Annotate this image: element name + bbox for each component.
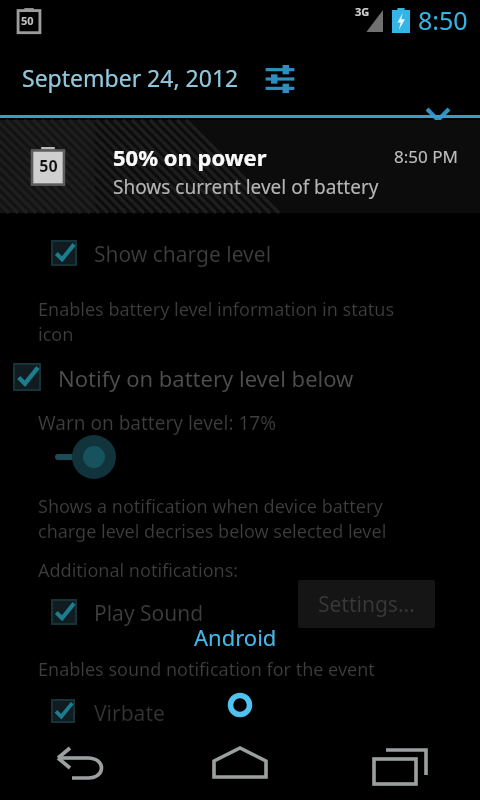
staticText: Shows current level of battery	[113, 174, 379, 200]
button[interactable]: Settings...	[298, 580, 435, 628]
staticText: Notify on battery level below	[58, 363, 354, 393]
staticText: Settings...	[318, 590, 415, 619]
button[interactable]	[52, 241, 76, 265]
staticText: 50% on power	[113, 142, 267, 172]
button[interactable]: Close	[420, 102, 456, 138]
button[interactable]: Quick settings	[262, 61, 298, 97]
staticText: September 24, 2012	[22, 62, 239, 93]
staticText: 8:50	[418, 3, 468, 37]
button[interactable]	[52, 600, 76, 624]
staticText: Enables sound notification for the event	[38, 657, 375, 682]
staticText: Warn on battery level: 17%	[38, 410, 276, 436]
button[interactable]: Home	[160, 728, 320, 800]
staticText: Shows a notification when device battery	[38, 494, 383, 519]
button[interactable]: Recents	[320, 728, 480, 800]
button[interactable]	[52, 700, 74, 722]
staticText: icon	[38, 322, 74, 347]
staticText: 50	[21, 13, 34, 28]
staticText: Play Sound	[94, 599, 204, 628]
staticText: Virbate	[94, 699, 165, 728]
staticText: 8:50 PM	[394, 145, 458, 168]
button[interactable]	[14, 364, 40, 390]
staticText: Enables battery level information in sta…	[38, 297, 395, 322]
staticText: Additional notifications:	[38, 558, 239, 583]
staticText: charge level decrises below selected lev…	[38, 519, 387, 544]
staticText: 50	[39, 155, 58, 177]
staticText: 3G	[355, 4, 370, 19]
button[interactable]: September 24, 2012	[22, 62, 239, 93]
button[interactable]: Android	[194, 622, 277, 652]
staticText: Android	[194, 622, 277, 652]
button[interactable]: 50	[0, 120, 480, 213]
button[interactable]: Back	[0, 728, 160, 800]
staticText: Show charge level	[94, 240, 272, 269]
